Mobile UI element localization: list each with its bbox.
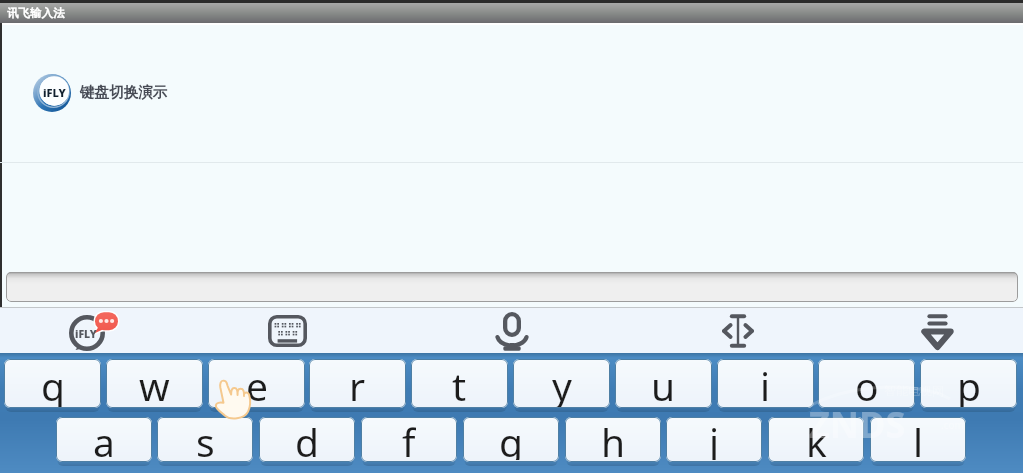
button[interactable]: a — [56, 417, 152, 462]
staticText: d — [295, 417, 319, 460]
staticText: w — [139, 359, 170, 408]
button[interactable]: Voice input — [469, 308, 555, 353]
button[interactable]: Move cursor — [695, 308, 781, 353]
button[interactable] — [6, 272, 1018, 302]
staticText: 键盘切换演示 — [80, 83, 167, 101]
staticText: g — [499, 417, 523, 460]
staticText: o — [855, 359, 879, 408]
staticText: f — [402, 417, 416, 460]
button[interactable]: e — [208, 359, 305, 408]
staticText: a — [93, 417, 115, 460]
button[interactable]: g — [463, 417, 559, 462]
button[interactable]: Input method — [51, 308, 137, 353]
button[interactable]: i — [717, 359, 814, 408]
staticText: t — [452, 359, 467, 408]
button[interactable]: Hide keyboard — [894, 308, 980, 353]
button[interactable]: s — [157, 417, 253, 462]
button[interactable]: u — [615, 359, 712, 408]
staticText: i — [760, 359, 771, 408]
button[interactable]: o — [818, 359, 915, 408]
button[interactable]: t — [411, 359, 508, 408]
button[interactable]: q — [4, 359, 101, 408]
staticText: y — [552, 359, 572, 408]
staticText: .com — [941, 418, 964, 432]
button[interactable]: p — [920, 359, 1017, 408]
staticText: ZNDS — [809, 400, 906, 449]
button[interactable]: w — [106, 359, 203, 408]
staticText: s — [196, 417, 215, 460]
button[interactable]: f — [361, 417, 457, 462]
button[interactable]: r — [309, 359, 406, 408]
staticText: u — [651, 359, 676, 408]
staticText: r — [349, 359, 366, 408]
staticText: 讯飞输入法 — [7, 6, 65, 20]
button[interactable]: d — [259, 417, 355, 462]
staticText: e — [246, 359, 268, 408]
button[interactable]: l — [870, 417, 966, 462]
button[interactable]: y — [513, 359, 610, 408]
button[interactable]: k — [768, 417, 864, 462]
button[interactable]: Keyboard — [244, 308, 330, 353]
staticText: iFLY — [43, 85, 66, 100]
button[interactable]: h — [565, 417, 661, 462]
staticText: k — [806, 417, 827, 460]
staticText: l — [913, 417, 924, 460]
staticText: j — [709, 417, 720, 460]
staticText: h — [601, 417, 626, 460]
staticText: p — [957, 359, 981, 408]
staticText: 智能电视网 — [884, 383, 944, 398]
button[interactable]: j — [666, 417, 762, 462]
staticText: iFLY — [75, 327, 97, 341]
staticText: q — [41, 359, 65, 408]
